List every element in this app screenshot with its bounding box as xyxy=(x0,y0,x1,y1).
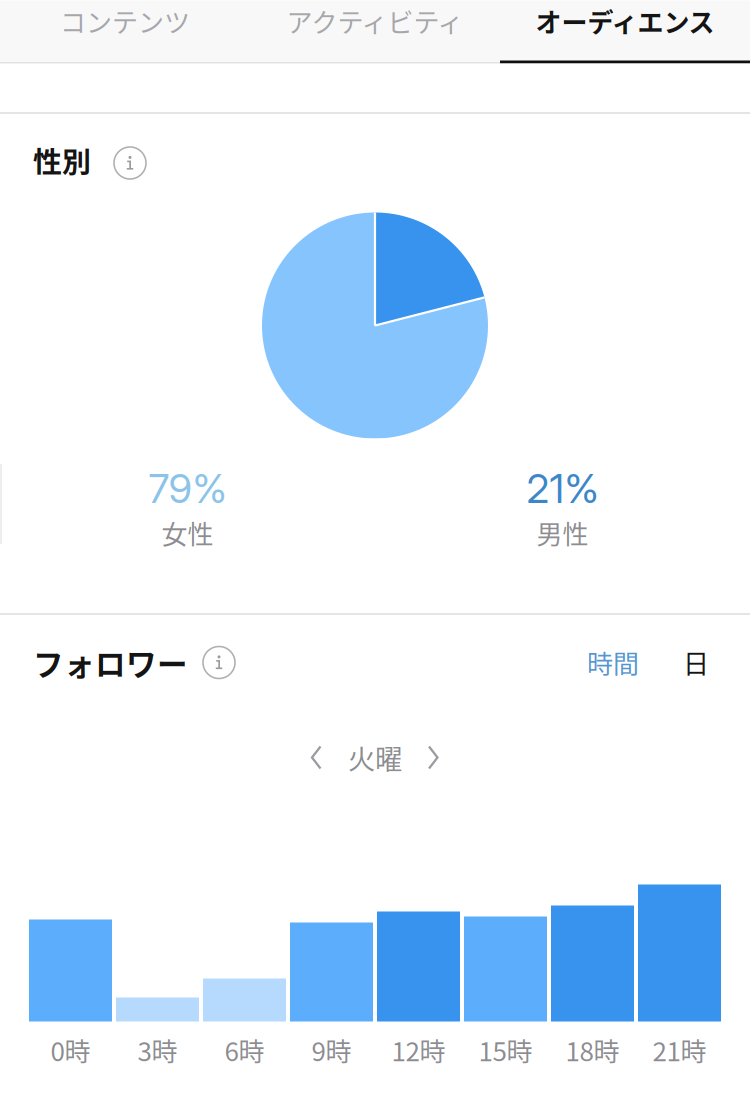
staticText: 15時 xyxy=(478,1031,532,1069)
staticText: 性別 xyxy=(33,139,91,181)
staticText: 79% xyxy=(148,464,226,513)
button[interactable]: コンテンツ xyxy=(0,0,250,63)
staticText: 女性 xyxy=(161,514,213,552)
staticText: 火曜 xyxy=(348,738,402,777)
staticText: 6時 xyxy=(224,1031,264,1069)
staticText: フォロワー xyxy=(33,640,188,685)
button[interactable]: 時間 xyxy=(587,644,639,681)
button[interactable]: 日 xyxy=(683,644,709,681)
staticText: 0時 xyxy=(50,1031,90,1069)
button[interactable]: アクティビティ xyxy=(250,0,500,63)
staticText: 9時 xyxy=(311,1031,351,1069)
staticText: 3時 xyxy=(137,1031,177,1069)
button[interactable]: Next day xyxy=(420,737,447,777)
staticText: アクティビティ xyxy=(286,2,463,40)
button[interactable]: オーディエンス xyxy=(500,0,750,63)
staticText: 時間 xyxy=(587,644,639,681)
staticText: オーディエンス xyxy=(535,2,714,40)
staticText: 男性 xyxy=(536,514,588,552)
staticText: 日 xyxy=(683,644,709,681)
staticText: コンテンツ xyxy=(60,2,190,40)
button[interactable]: Previous day xyxy=(303,737,330,777)
staticText: 21% xyxy=(526,464,598,513)
staticText: 12時 xyxy=(391,1031,445,1069)
staticText: 21時 xyxy=(652,1031,706,1069)
staticText: 18時 xyxy=(565,1031,619,1069)
